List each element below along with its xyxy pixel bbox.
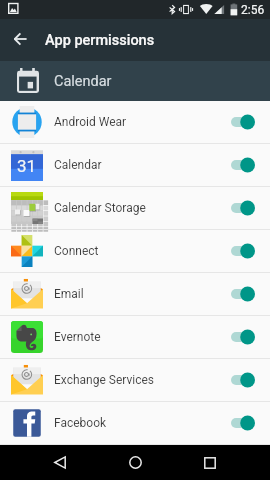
staticText: Calendar Storage <box>54 201 231 215</box>
button[interactable]: Android Wear <box>0 101 270 144</box>
button[interactable]: Exchange Services <box>0 359 270 402</box>
button[interactable]: Home <box>111 445 159 480</box>
button[interactable]: Email <box>0 273 270 316</box>
button[interactable]: Connect <box>0 230 270 273</box>
button[interactable]: Calendar Storage <box>0 187 270 230</box>
staticText: Connect <box>54 244 231 258</box>
button[interactable]: Back <box>36 445 84 480</box>
staticText: Android Wear <box>54 115 231 129</box>
button[interactable]: Evernote <box>0 316 270 359</box>
button[interactable]: Recent apps <box>186 445 234 480</box>
staticText: App permissions <box>45 32 155 49</box>
staticText: 2:56 <box>241 3 265 17</box>
staticText: Calendar <box>54 73 112 90</box>
button[interactable]: Navigate up <box>0 19 40 61</box>
staticText: 31 <box>17 156 37 176</box>
staticText: Calendar <box>54 158 231 172</box>
staticText: Email <box>54 287 231 301</box>
button[interactable]: Facebook <box>0 402 270 445</box>
staticText: Facebook <box>54 416 231 430</box>
button[interactable]: 31 <box>0 144 270 187</box>
staticText: Exchange Services <box>54 373 231 387</box>
staticText: Evernote <box>54 330 231 344</box>
